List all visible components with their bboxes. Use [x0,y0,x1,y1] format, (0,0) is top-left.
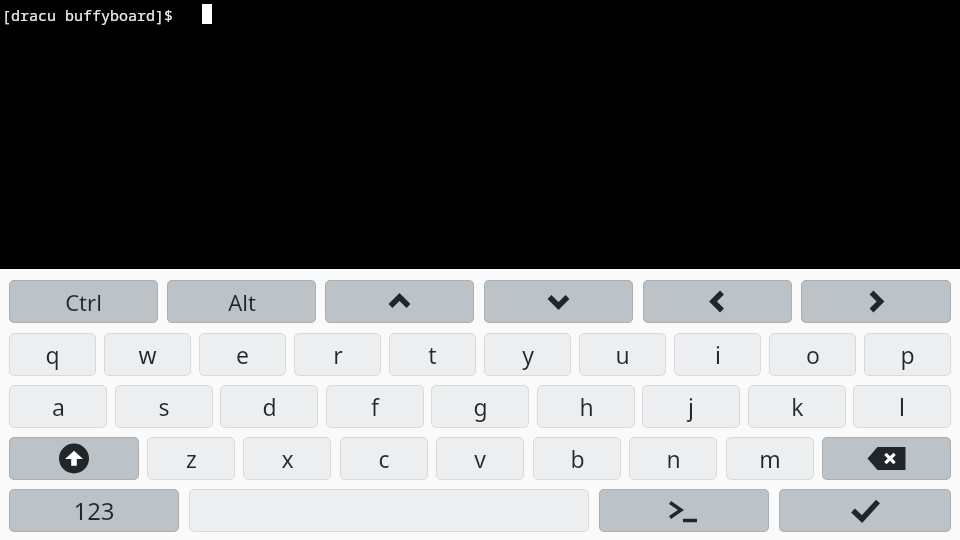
staticText: s [158,391,170,422]
staticText: e [236,339,249,370]
staticText: w [138,339,157,370]
staticText: r [333,339,343,370]
staticText: 123 [73,494,115,527]
button[interactable]: Alt [167,280,316,323]
staticText: q [45,339,60,370]
button[interactable]: Left [643,280,792,323]
button[interactable]: p [864,333,951,376]
staticText: k [791,391,804,422]
button[interactable]: z [147,437,235,480]
button[interactable]: t [389,333,476,376]
button[interactable]: l [853,385,951,428]
button[interactable]: n [629,437,717,480]
button[interactable]: Up [325,280,474,323]
button[interactable]: Ctrl [9,280,158,323]
button[interactable]: x [243,437,331,480]
button[interactable]: 123 [9,489,179,532]
button[interactable]: k [748,385,846,428]
button[interactable]: Backspace [822,437,951,480]
button[interactable]: j [642,385,740,428]
staticText: y [522,339,534,370]
button[interactable]: Down [484,280,633,323]
staticText: m [759,443,781,474]
button[interactable]: c [340,437,428,480]
staticText: v [474,443,486,474]
button[interactable]: b [533,437,621,480]
button[interactable]: Right [801,280,951,323]
staticText: d [262,391,277,422]
button[interactable]: q [9,333,96,376]
button[interactable]: Terminal prompt [599,489,769,532]
button[interactable]: w [104,333,191,376]
button[interactable]: v [436,437,524,480]
staticText: Ctrl [65,287,102,317]
button[interactable]: g [431,385,529,428]
button[interactable]: Enter [779,489,951,532]
staticText: n [666,443,681,474]
button[interactable]: i [674,333,761,376]
staticText: j [688,391,694,422]
button[interactable]: d [220,385,318,428]
button[interactable]: u [579,333,666,376]
button[interactable]: Shift [9,437,139,480]
button[interactable]: o [769,333,856,376]
button[interactable]: r [294,333,381,376]
staticText: f [371,391,379,422]
staticText: p [900,339,915,370]
button[interactable]: Space [189,489,589,532]
staticText: z [186,443,197,474]
staticText: o [806,339,820,370]
staticText: t [428,339,437,370]
button[interactable]: h [537,385,635,428]
staticText: l [899,391,905,422]
staticText: c [378,443,390,474]
staticText: a [52,391,65,422]
staticText: Alt [228,287,256,317]
button[interactable]: m [726,437,814,480]
button[interactable]: f [326,385,424,428]
button[interactable]: y [484,333,571,376]
staticText: u [615,339,630,370]
button[interactable]: e [199,333,286,376]
staticText: h [579,391,594,422]
staticText: g [473,391,488,422]
button[interactable]: a [9,385,107,428]
staticText: [dracu buffyboard]$ [2,5,174,25]
staticText: b [570,443,585,474]
staticText: x [281,443,294,474]
button[interactable]: s [115,385,213,428]
staticText: i [715,339,721,370]
